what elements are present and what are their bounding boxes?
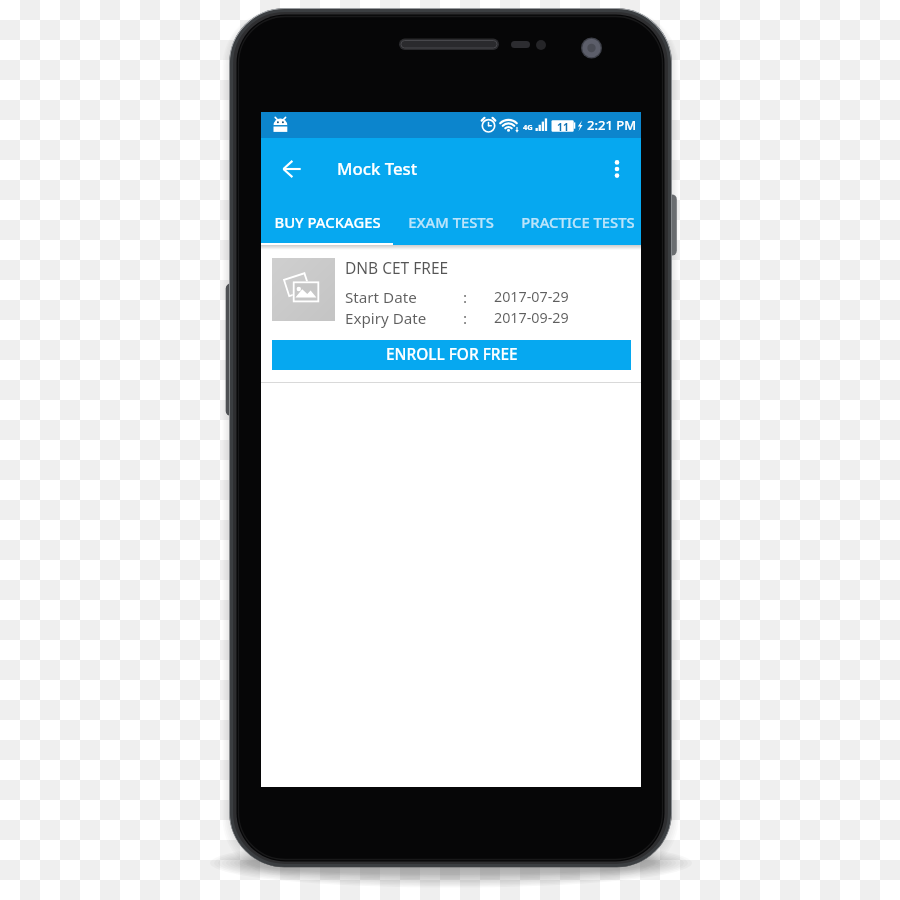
button[interactable]: BUY PACKAGES <box>261 199 393 246</box>
staticText: : <box>463 308 468 329</box>
staticText: PRACTICE TESTS <box>521 212 635 232</box>
button[interactable]: DNB CET FREE <box>261 245 641 383</box>
button[interactable]: PRACTICE TESTS <box>508 199 648 246</box>
staticText: Expiry Date <box>345 308 427 329</box>
button[interactable]: Navigate up <box>271 148 313 190</box>
staticText: EXAM TESTS <box>408 212 494 232</box>
staticText: BUY PACKAGES <box>274 212 381 232</box>
staticText: 4G <box>523 122 533 132</box>
staticText: 11 <box>557 120 569 134</box>
button[interactable]: More options <box>597 149 637 189</box>
staticText: Mock Test <box>337 157 418 180</box>
staticText: Start Date <box>345 287 417 308</box>
staticText: 2017-07-29 <box>494 287 569 306</box>
staticText: ENROLL FOR FREE <box>386 344 518 365</box>
staticText: DNB CET FREE <box>345 257 449 278</box>
button[interactable]: EXAM TESTS <box>393 199 508 246</box>
staticText: 2017-09-29 <box>494 308 569 327</box>
staticText: 2:21 PM <box>587 116 637 134</box>
button[interactable]: ENROLL FOR FREE <box>272 340 631 370</box>
staticText: : <box>463 287 468 308</box>
